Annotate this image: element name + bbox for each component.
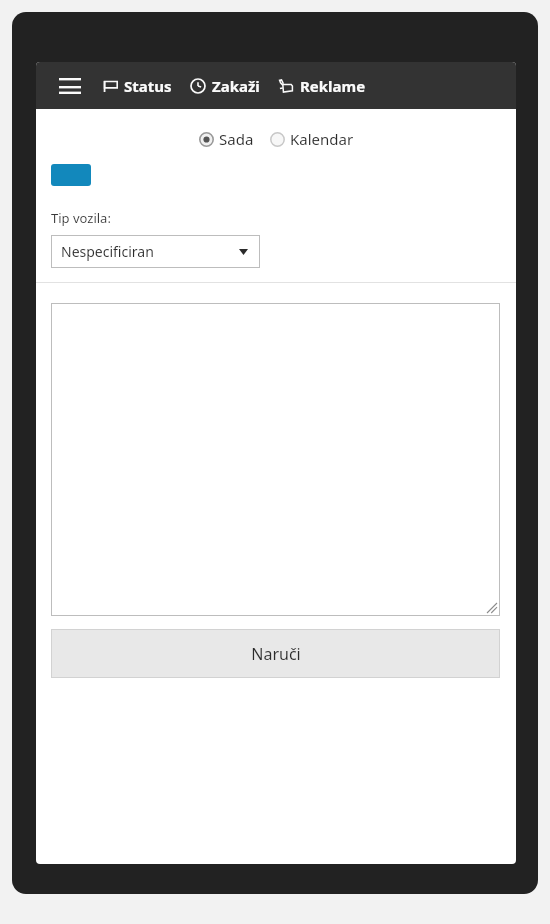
- button[interactable]: Naruči: [51, 629, 500, 678]
- staticText: Reklame: [300, 76, 366, 96]
- button[interactable]: Action: [51, 164, 91, 186]
- staticText: Kalendar: [290, 129, 354, 149]
- button[interactable]: Sada: [198, 126, 255, 152]
- staticText: Sada: [219, 129, 254, 149]
- staticText: Naruči: [251, 643, 301, 665]
- staticText: Status: [124, 76, 172, 96]
- staticText: Tip vozila:: [51, 209, 111, 227]
- button[interactable]: Status: [100, 70, 174, 102]
- button[interactable]: Note input: [51, 303, 500, 616]
- button[interactable]: Menu: [52, 68, 88, 104]
- button[interactable]: Kalendar: [269, 126, 355, 152]
- button[interactable]: Reklame: [276, 70, 368, 102]
- button[interactable]: Zakaži: [188, 70, 262, 102]
- button[interactable]: Nespecificiran: [51, 235, 260, 268]
- staticText: Nespecificiran: [61, 242, 154, 261]
- staticText: Zakaži: [212, 76, 260, 96]
